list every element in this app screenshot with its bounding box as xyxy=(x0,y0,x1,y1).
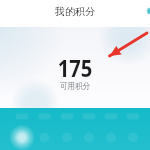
button[interactable]: Points rules xyxy=(145,6,150,16)
staticText: 我的积分 xyxy=(55,5,95,18)
button[interactable]: Daily check-in xyxy=(0,108,150,150)
staticText: 可用积分 xyxy=(60,81,90,92)
staticText: 175 xyxy=(57,51,93,84)
